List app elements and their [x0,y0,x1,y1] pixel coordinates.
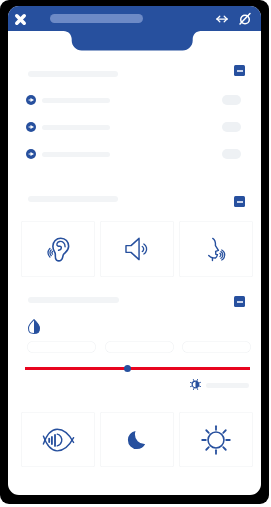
button[interactable]: Dark mode [100,412,174,467]
button[interactable]: Close [11,10,29,28]
button[interactable]: Option [27,341,96,353]
button[interactable]: Collapse section [234,65,245,76]
button[interactable]: Toggle [222,149,241,159]
button[interactable]: Contrast [21,412,95,467]
button[interactable]: Resize [213,10,231,28]
button[interactable]: Toggle [222,122,241,132]
button[interactable]: Slider thumb [124,365,131,372]
button[interactable]: Speech [179,221,253,277]
button[interactable]: Hide [236,10,254,28]
button[interactable]: Option [182,341,251,353]
button[interactable]: Collapse section [234,296,245,307]
button[interactable]: Collapse section [234,196,245,207]
button[interactable]: Expand [26,149,36,159]
button[interactable]: Brightness [179,412,253,467]
button[interactable]: Expand [26,122,36,132]
button[interactable]: Toggle [222,95,241,105]
button[interactable]: Expand [26,95,36,105]
button[interactable]: Hearing [21,221,95,277]
button[interactable]: Volume [100,221,174,277]
button[interactable]: Option [105,341,174,353]
